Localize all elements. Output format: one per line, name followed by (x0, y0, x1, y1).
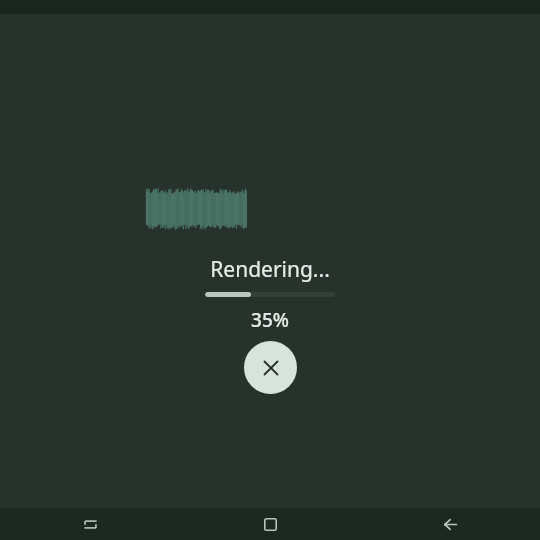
button[interactable]: Back (360, 508, 540, 540)
button[interactable]: Recent apps (0, 508, 180, 540)
staticText: Rendering... (210, 255, 330, 284)
button[interactable]: Cancel rendering (244, 341, 297, 394)
button[interactable]: Home (180, 508, 360, 540)
staticText: 35% (251, 307, 289, 333)
